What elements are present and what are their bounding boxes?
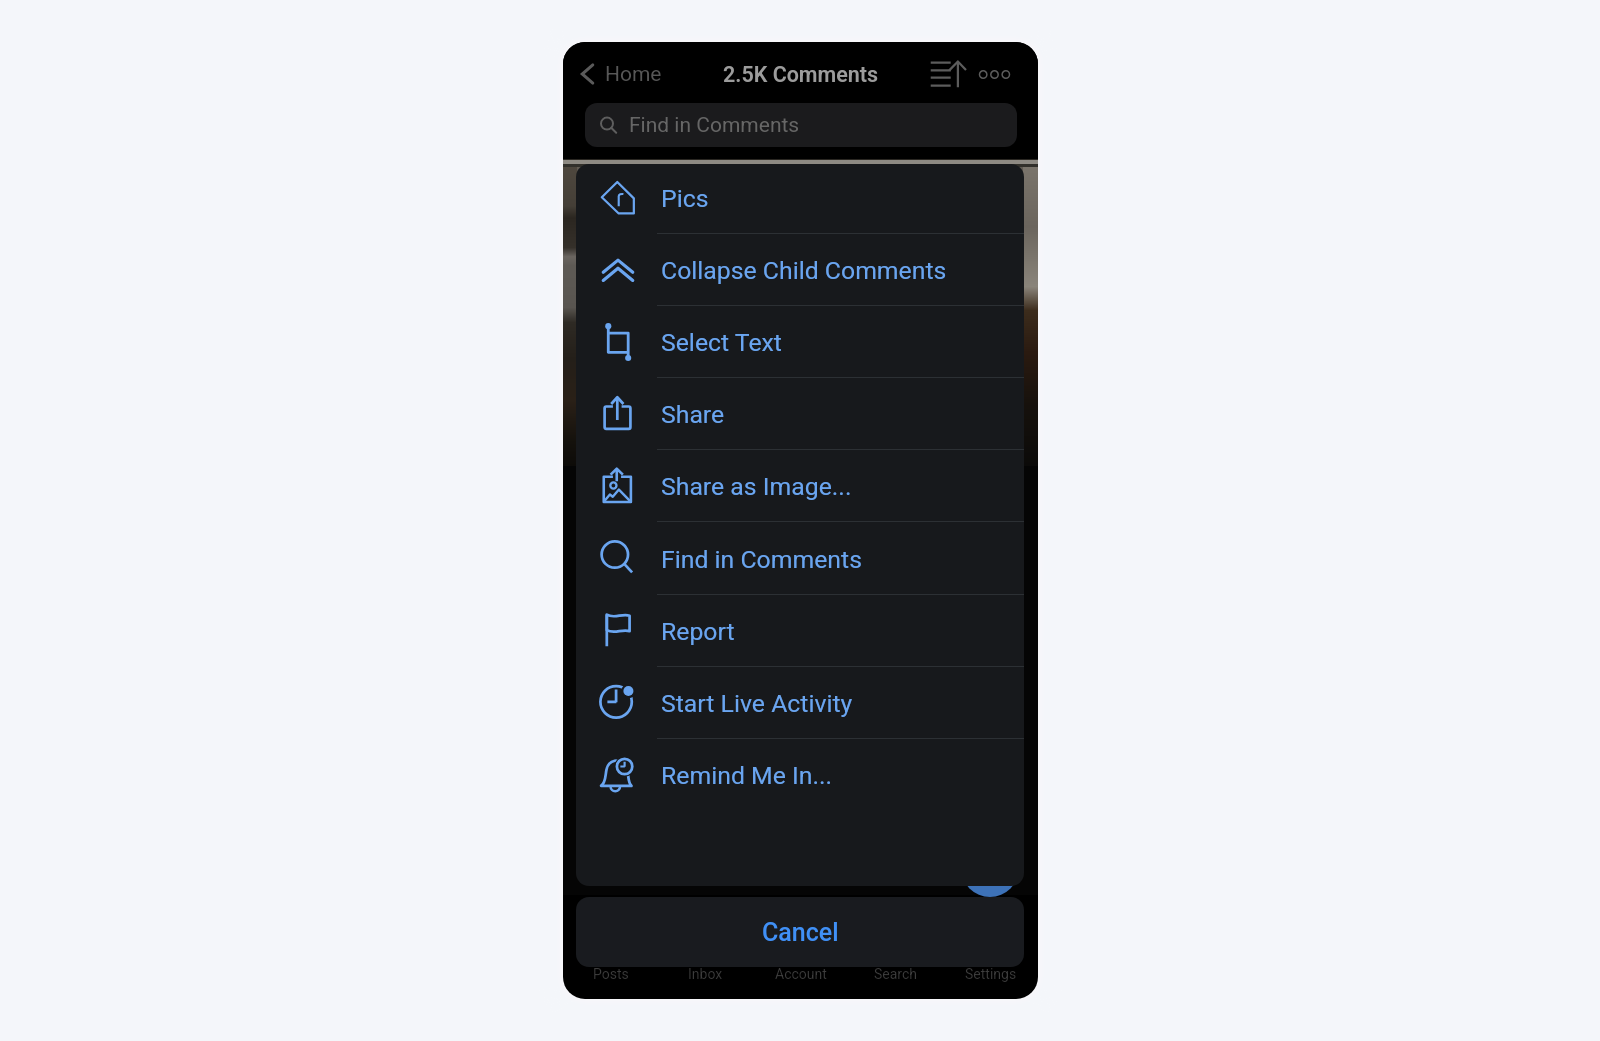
button[interactable]: Share as Image... xyxy=(576,450,1024,522)
staticText: Search xyxy=(874,966,918,982)
staticText: Inbox xyxy=(688,966,723,982)
staticText: Home xyxy=(605,62,662,87)
button[interactable]: Find in Comments xyxy=(576,523,1024,595)
staticText: Cancel xyxy=(762,918,839,947)
staticText: Share xyxy=(661,400,725,429)
button[interactable]: Start Live Activity xyxy=(576,667,1024,739)
staticText: Account xyxy=(775,966,827,982)
staticText: Share as Image... xyxy=(661,472,852,501)
button[interactable]: New post xyxy=(961,839,1019,897)
button[interactable]: Inbox xyxy=(658,962,753,978)
button[interactable]: Posts xyxy=(563,962,658,978)
staticText: Collapse Child Comments xyxy=(661,256,947,285)
staticText: Remind Me In... xyxy=(661,761,833,790)
button[interactable]: Sort comments xyxy=(925,52,971,96)
staticText: Select Text xyxy=(661,328,782,357)
staticText: Start Live Activity xyxy=(661,689,853,718)
staticText: Pics xyxy=(661,184,709,213)
button[interactable]: Pics xyxy=(576,164,1024,234)
button[interactable]: Search xyxy=(848,962,943,978)
button[interactable]: Share xyxy=(576,378,1024,450)
staticText: 2.5K Comments xyxy=(723,62,879,87)
staticText: Find in Comments xyxy=(661,545,862,574)
button[interactable]: Settings xyxy=(943,962,1038,978)
button[interactable]: Report xyxy=(576,595,1024,667)
button[interactable]: Collapse Child Comments xyxy=(576,234,1024,306)
button[interactable]: Cancel xyxy=(576,897,1024,967)
staticText: Report xyxy=(661,617,735,646)
button[interactable]: Remind Me In... xyxy=(576,739,1024,811)
button[interactable]: Find in Comments xyxy=(585,103,1017,147)
staticText: Find in Comments xyxy=(629,113,800,138)
button[interactable]: Select Text xyxy=(576,306,1024,378)
staticText: Settings xyxy=(965,966,1017,982)
button[interactable]: Home xyxy=(563,52,672,96)
button[interactable]: Account xyxy=(753,962,848,978)
button[interactable]: More options xyxy=(972,52,1016,96)
staticText: Posts xyxy=(593,966,629,982)
